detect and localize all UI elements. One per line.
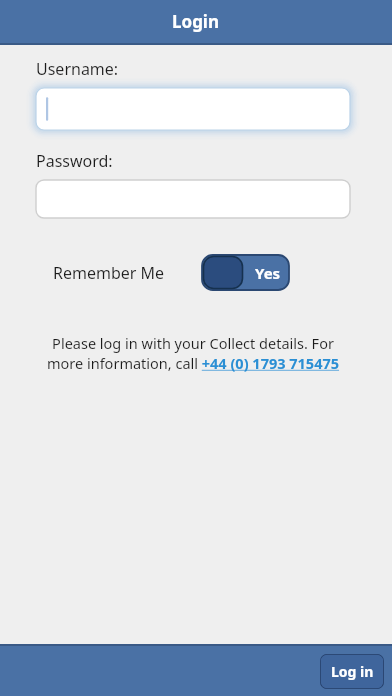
staticText: Password:	[36, 150, 113, 172]
button[interactable]: Log in	[320, 654, 384, 689]
staticText: Login	[172, 10, 220, 33]
staticText: Remember Me	[53, 262, 165, 284]
button[interactable]	[36, 180, 350, 218]
staticText: Username:	[36, 58, 119, 80]
staticText: Log in	[331, 662, 374, 681]
button[interactable]	[36, 88, 350, 130]
button[interactable]: Remember Me toggle, Yes	[202, 255, 289, 290]
staticText: Please log in with your Collect details.…	[36, 333, 350, 373]
staticText: Yes	[255, 263, 281, 283]
